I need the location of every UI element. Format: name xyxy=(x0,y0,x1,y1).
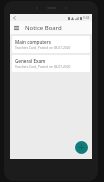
staticText: 9:04 xyxy=(83,16,90,20)
staticText: Main computers xyxy=(15,39,51,45)
button[interactable]: General Exam xyxy=(12,55,90,72)
button[interactable]: Add notice xyxy=(75,141,88,154)
staticText: Notice Board xyxy=(25,24,62,32)
button[interactable]: Open navigation drawer xyxy=(12,23,21,32)
staticText: Teachers Card, Posted on 08-07-2020 xyxy=(15,46,71,50)
staticText: General Exam xyxy=(15,58,46,64)
staticText: Teachers Card, Posted on 08-07-2020 xyxy=(15,65,71,69)
button[interactable]: Main computers xyxy=(12,36,90,53)
